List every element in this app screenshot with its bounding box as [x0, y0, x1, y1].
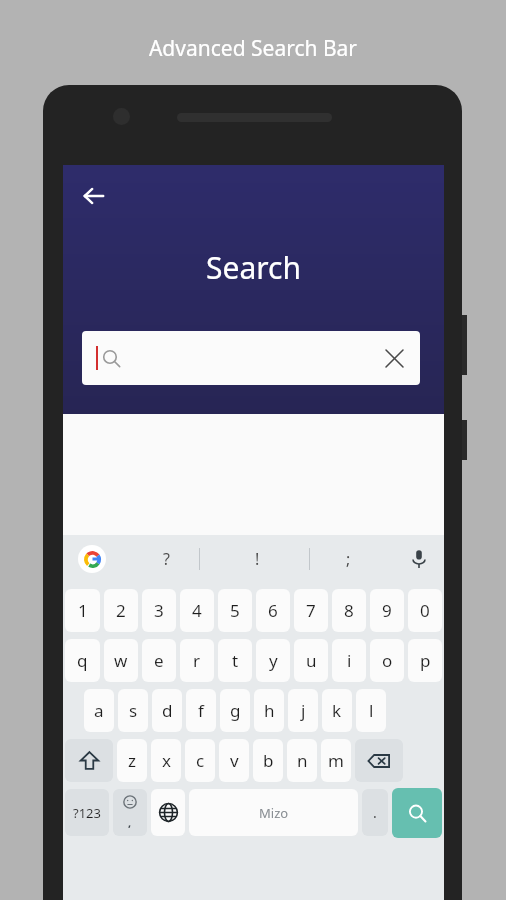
button[interactable]: s — [118, 689, 148, 732]
button[interactable]: Clear — [376, 340, 412, 376]
button[interactable]: . — [362, 789, 388, 836]
staticText: 4 — [192, 599, 202, 622]
staticText: , — [128, 815, 132, 830]
staticText: j — [301, 699, 306, 722]
staticText: Search — [63, 247, 444, 288]
staticText: f — [198, 699, 204, 722]
button[interactable]: m — [321, 739, 351, 782]
button[interactable]: Key — [355, 739, 403, 782]
staticText: k — [332, 699, 342, 722]
button[interactable]: y — [256, 639, 290, 682]
staticText: b — [263, 749, 274, 772]
staticText: 9 — [382, 599, 392, 622]
staticText: 8 — [344, 599, 354, 622]
button[interactable]: ; — [303, 535, 394, 583]
button[interactable]: Mizo — [189, 789, 358, 836]
button[interactable]: Key — [65, 739, 113, 782]
staticText: z — [128, 749, 136, 772]
staticText: 7 — [306, 599, 316, 622]
staticText: m — [328, 749, 344, 772]
button[interactable]: 2 — [104, 589, 138, 632]
staticText: p — [420, 649, 431, 672]
staticText: 5 — [230, 599, 240, 622]
staticText: Advanced Search Bar — [0, 34, 506, 63]
staticText: a — [94, 699, 104, 722]
staticText: d — [162, 699, 173, 722]
button[interactable]: h — [254, 689, 284, 732]
button[interactable]: 8 — [332, 589, 366, 632]
button[interactable]: o — [370, 639, 404, 682]
button[interactable]: i — [332, 639, 366, 682]
staticText: r — [193, 649, 201, 672]
button[interactable]: a — [84, 689, 114, 732]
button[interactable]: Google — [78, 545, 106, 573]
button[interactable]: 1 — [65, 589, 100, 632]
button[interactable]: f — [186, 689, 216, 732]
button[interactable]: Key — [151, 789, 185, 836]
staticText: ?123 — [73, 804, 101, 822]
button[interactable]: 6 — [256, 589, 290, 632]
staticText: . — [373, 803, 377, 822]
staticText: ! — [255, 548, 260, 570]
staticText: o — [382, 649, 393, 672]
staticText: c — [196, 749, 205, 772]
staticText: e — [154, 649, 164, 672]
staticText: ? — [163, 548, 170, 570]
staticText: u — [306, 649, 317, 672]
staticText: 6 — [268, 599, 278, 622]
button[interactable]: b — [253, 739, 283, 782]
button[interactable]: c — [185, 739, 215, 782]
staticText: 0 — [420, 599, 430, 622]
staticText: w — [114, 649, 128, 672]
staticText: ; — [346, 548, 351, 570]
button[interactable]: Voice input — [394, 535, 444, 583]
button[interactable]: e — [142, 639, 176, 682]
staticText: g — [230, 699, 241, 722]
staticText: l — [369, 699, 374, 722]
button[interactable]: j — [288, 689, 318, 732]
button[interactable]: d — [152, 689, 182, 732]
button[interactable]: 7 — [294, 589, 328, 632]
button[interactable]: Back — [74, 176, 114, 216]
button[interactable]: l — [356, 689, 386, 732]
button[interactable]: x — [151, 739, 181, 782]
button[interactable]: Search — [392, 788, 442, 838]
button[interactable]: 3 — [142, 589, 176, 632]
button[interactable]: 5 — [218, 589, 252, 632]
staticText: s — [129, 699, 138, 722]
button[interactable]: r — [180, 639, 214, 682]
staticText: Mizo — [259, 804, 289, 822]
button[interactable]: w — [104, 639, 138, 682]
staticText: 1 — [78, 599, 88, 622]
button[interactable]: 4 — [180, 589, 214, 632]
button[interactable]: 0 — [408, 589, 442, 632]
staticText: x — [162, 749, 171, 772]
button[interactable]: g — [220, 689, 250, 732]
button[interactable]: Clear — [82, 331, 420, 385]
button[interactable]: p — [408, 639, 442, 682]
button[interactable]: ?123 — [65, 789, 109, 836]
button[interactable]: k — [322, 689, 352, 732]
button[interactable]: t — [218, 639, 252, 682]
button[interactable]: Key — [113, 789, 147, 836]
button[interactable]: ? — [121, 535, 212, 583]
button[interactable]: v — [219, 739, 249, 782]
button[interactable]: q — [65, 639, 100, 682]
staticText: h — [264, 699, 275, 722]
button[interactable]: u — [294, 639, 328, 682]
button[interactable]: 9 — [370, 589, 404, 632]
staticText: y — [269, 649, 278, 672]
staticText: q — [77, 649, 88, 672]
staticText: i — [347, 649, 352, 672]
button[interactable]: n — [287, 739, 317, 782]
staticText: 3 — [154, 599, 164, 622]
button[interactable]: z — [117, 739, 147, 782]
button[interactable]: ! — [212, 535, 303, 583]
staticText: 2 — [116, 599, 126, 622]
staticText: v — [230, 749, 239, 772]
staticText: t — [232, 649, 239, 672]
staticText: n — [297, 749, 308, 772]
